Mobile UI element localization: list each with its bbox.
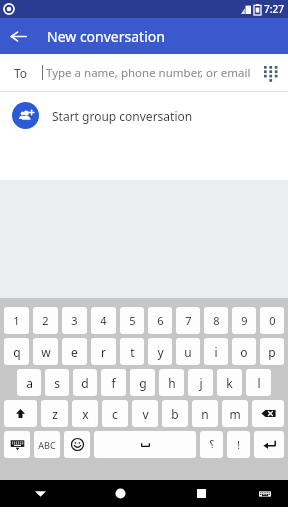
staticText: Type a name, phone number, or email	[46, 65, 251, 81]
staticText: 5	[129, 313, 136, 328]
button[interactable]: b	[162, 400, 188, 427]
button[interactable]: u	[176, 338, 200, 365]
button[interactable]: Back	[0, 480, 80, 507]
button[interactable]: r	[91, 338, 116, 365]
button[interactable]: !	[227, 431, 250, 458]
button[interactable]: Back	[0, 18, 36, 54]
button[interactable]: c	[102, 400, 128, 427]
staticText: 4	[100, 313, 107, 328]
staticText: p	[268, 344, 276, 360]
button[interactable]: 8	[204, 307, 228, 334]
button[interactable]: a	[17, 369, 41, 396]
button[interactable]: Recents	[161, 480, 242, 507]
staticText: q	[13, 344, 21, 360]
button[interactable]: ABC	[34, 431, 60, 458]
staticText: t	[130, 344, 135, 360]
button[interactable]: 6	[148, 307, 172, 334]
button[interactable]: o	[232, 338, 256, 365]
button[interactable]: k	[217, 369, 242, 396]
staticText: j	[199, 375, 203, 391]
staticText: r	[101, 344, 106, 360]
button[interactable]: n	[192, 400, 218, 427]
staticText: !	[237, 438, 240, 452]
staticText: b	[171, 406, 179, 422]
button[interactable]: y	[148, 338, 172, 365]
staticText: l	[257, 375, 261, 391]
button[interactable]: Switch keyboard	[4, 431, 30, 458]
staticText: o	[240, 344, 248, 360]
button[interactable]: ؟	[200, 431, 223, 458]
button[interactable]: 0	[260, 307, 284, 334]
button[interactable]: Emoji	[64, 431, 90, 458]
button[interactable]: 1	[4, 307, 29, 334]
button[interactable]: i	[204, 338, 228, 365]
button[interactable]: Dialpad	[254, 56, 288, 90]
button[interactable]: 3	[62, 307, 87, 334]
button[interactable]: 4	[91, 307, 116, 334]
staticText: m	[229, 406, 241, 422]
button[interactable]: w	[33, 338, 58, 365]
staticText: ABC	[38, 439, 56, 451]
button[interactable]: Space	[94, 431, 196, 458]
button[interactable]: Change keyboard	[242, 480, 288, 507]
button[interactable]: t	[120, 338, 144, 365]
button[interactable]: Shift	[4, 400, 37, 427]
button[interactable]: 2	[33, 307, 58, 334]
staticText: c	[112, 406, 118, 422]
staticText: To	[14, 65, 28, 81]
button[interactable]: p	[260, 338, 284, 365]
button[interactable]: Enter	[254, 431, 284, 458]
staticText: Start group conversation	[52, 108, 193, 124]
staticText: i	[214, 344, 218, 360]
staticText: 3	[71, 313, 78, 328]
staticText: h	[168, 375, 176, 391]
button[interactable]: Start group conversation	[0, 92, 288, 139]
button[interactable]: l	[246, 369, 271, 396]
staticText: 8	[213, 313, 220, 328]
button[interactable]: 9	[232, 307, 256, 334]
staticText: e	[71, 344, 78, 360]
button[interactable]: Home	[80, 480, 161, 507]
staticText: w	[41, 344, 51, 360]
button[interactable]: z	[41, 400, 68, 427]
staticText: 0	[269, 313, 276, 328]
staticText: z	[52, 406, 58, 422]
staticText: v	[142, 406, 149, 422]
button[interactable]: g	[130, 369, 155, 396]
button[interactable]: q	[4, 338, 29, 365]
staticText: k	[226, 375, 233, 391]
button[interactable]: 7	[176, 307, 200, 334]
staticText: 7	[185, 313, 192, 328]
staticText: 9	[241, 313, 248, 328]
staticText: y	[157, 344, 164, 360]
button[interactable]: f	[101, 369, 126, 396]
staticText: 2	[42, 313, 49, 328]
staticText: ؟	[209, 439, 215, 451]
button[interactable]: Backspace	[252, 400, 284, 427]
button[interactable]: x	[72, 400, 98, 427]
staticText: x	[82, 406, 89, 422]
staticText: a	[26, 375, 33, 391]
staticText: 6	[157, 313, 164, 328]
staticText: g	[139, 375, 147, 391]
button[interactable]: v	[132, 400, 158, 427]
staticText: n	[201, 406, 209, 422]
staticText: 7:27	[264, 2, 284, 16]
staticText: s	[54, 375, 60, 391]
staticText: New conversation	[47, 27, 165, 46]
button[interactable]: 5	[120, 307, 144, 334]
button[interactable]: e	[62, 338, 87, 365]
button[interactable]: j	[188, 369, 213, 396]
button[interactable]: m	[222, 400, 248, 427]
staticText: f	[111, 375, 116, 391]
button[interactable]: d	[73, 369, 97, 396]
staticText: 1	[13, 313, 20, 328]
button[interactable]: s	[45, 369, 69, 396]
button[interactable]: h	[159, 369, 184, 396]
staticText: d	[81, 375, 89, 391]
staticText: u	[184, 344, 192, 360]
